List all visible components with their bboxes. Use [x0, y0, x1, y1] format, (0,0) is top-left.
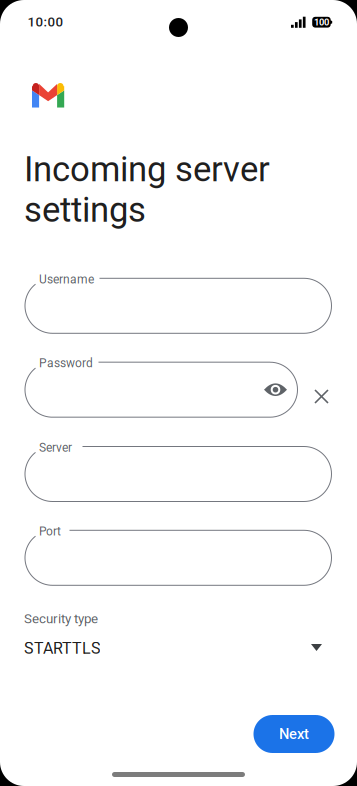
staticText: Incoming server settings [24, 149, 270, 230]
staticText: Next [279, 725, 309, 743]
button[interactable]: Show password [255, 370, 295, 410]
staticText: Server [39, 440, 72, 455]
button[interactable]: Security type [24, 611, 332, 659]
staticText: STARTTLS [24, 639, 101, 658]
button[interactable]: Next [253, 715, 334, 753]
staticText: Password [39, 356, 93, 370]
staticText: 100 [314, 17, 329, 28]
button[interactable]: Clear password [306, 381, 337, 412]
staticText: Security type [24, 611, 98, 627]
staticText: Username [39, 272, 94, 286]
staticText: Port [39, 524, 61, 538]
staticText: 10:00 [27, 14, 63, 30]
